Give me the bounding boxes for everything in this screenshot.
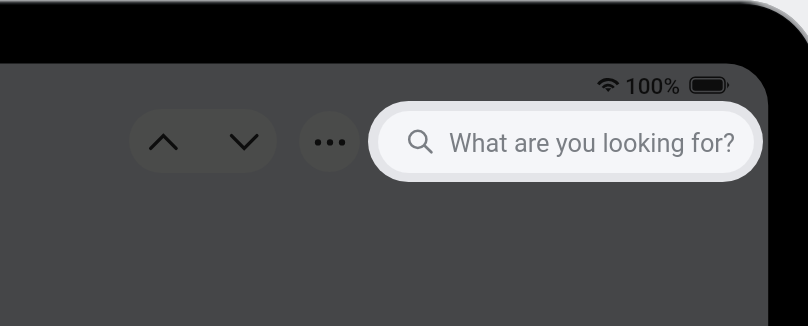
button[interactable]: Previous result [129, 109, 203, 173]
button[interactable]: Next result [203, 109, 277, 173]
button[interactable]: More options [299, 111, 360, 172]
staticText: 100% [625, 73, 680, 99]
staticText: What are you looking for? [449, 128, 735, 158]
button[interactable]: What are you looking for? [368, 101, 763, 182]
